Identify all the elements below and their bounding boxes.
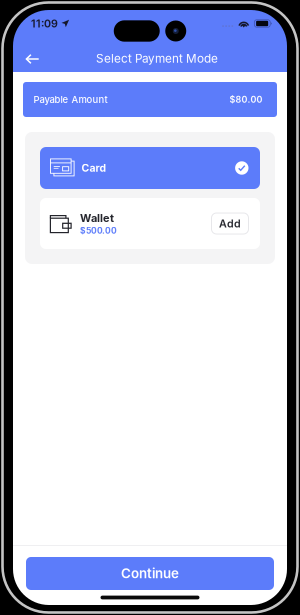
staticText: $500.00 [80, 225, 117, 236]
button[interactable]: Card [40, 147, 260, 189]
button[interactable]: Add [211, 213, 248, 234]
staticText: Payable Amount [33, 94, 107, 105]
staticText: Select Payment Mode [96, 51, 218, 66]
staticText: 11:09 [31, 17, 58, 30]
staticText: Add [219, 217, 241, 230]
staticText: Continue [121, 565, 179, 581]
staticText: Wallet [80, 211, 114, 224]
staticText: Card [81, 162, 106, 174]
button[interactable]: Back [19, 47, 45, 71]
staticText: $80.00 [229, 94, 262, 105]
button[interactable]: Continue [26, 557, 274, 590]
